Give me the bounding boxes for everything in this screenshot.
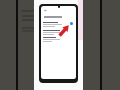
button[interactable]: Back (42, 8, 48, 13)
button[interactable] (41, 37, 76, 44)
button[interactable] (41, 30, 76, 37)
button[interactable] (41, 22, 76, 29)
